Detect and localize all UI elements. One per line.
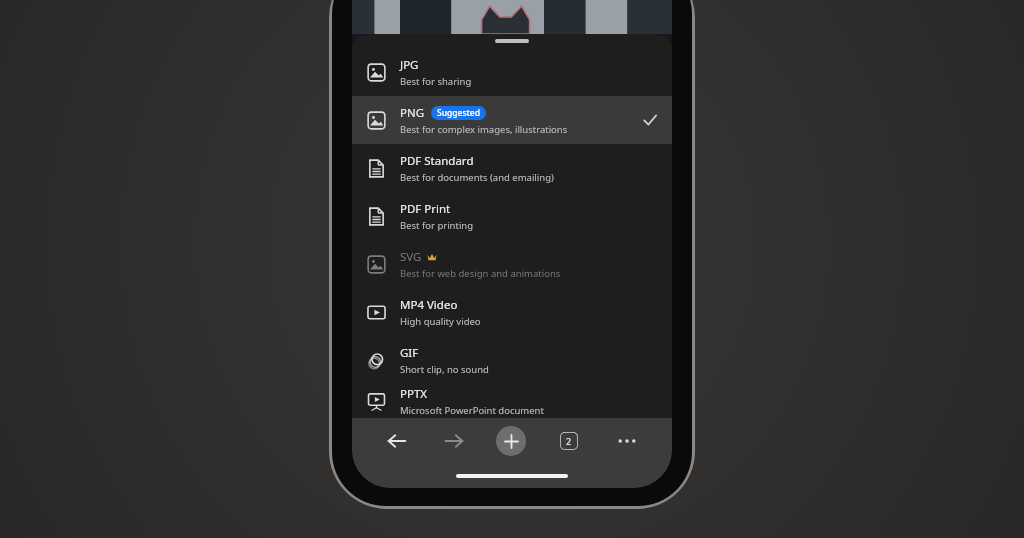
- staticText: PNG: [400, 105, 425, 121]
- button[interactable]: Tabs, 2 open: [540, 418, 598, 464]
- button[interactable]: PDF Standard: [352, 144, 672, 192]
- button[interactable]: SVG: [352, 240, 672, 288]
- button[interactable]: JPG: [352, 48, 672, 96]
- staticText: PDF Print: [400, 201, 451, 217]
- button[interactable]: PPTX: [352, 384, 672, 418]
- staticText: Best for web design and animations: [400, 267, 561, 280]
- staticText: Best for documents (and emailing): [400, 171, 554, 184]
- staticText: PDF Standard: [400, 153, 474, 169]
- staticText: SVG: [400, 249, 422, 265]
- staticText: PPTX: [400, 386, 428, 402]
- staticText: High quality video: [400, 315, 481, 328]
- staticText: 2: [566, 435, 572, 447]
- button[interactable]: PDF Print: [352, 192, 672, 240]
- staticText: GIF: [400, 345, 419, 361]
- staticText: Suggested: [437, 107, 480, 119]
- staticText: MP4 Video: [400, 297, 458, 313]
- staticText: Best for complex images, illustrations: [400, 123, 568, 136]
- button[interactable]: MP4 Video: [352, 288, 672, 336]
- staticText: Best for sharing: [400, 75, 472, 88]
- staticText: JPG: [400, 57, 419, 73]
- staticText: Short clip, no sound: [400, 363, 489, 376]
- other: Selected: [642, 112, 658, 128]
- button[interactable]: Forward: [425, 418, 482, 464]
- button[interactable]: GIF: [352, 336, 672, 384]
- button[interactable]: Back: [368, 418, 425, 464]
- button[interactable]: New tab: [482, 418, 540, 464]
- staticText: Microsoft PowerPoint document: [400, 404, 544, 417]
- button[interactable]: More options: [598, 418, 656, 464]
- staticText: Best for printing: [400, 219, 474, 232]
- button[interactable]: PNG: [352, 96, 672, 144]
